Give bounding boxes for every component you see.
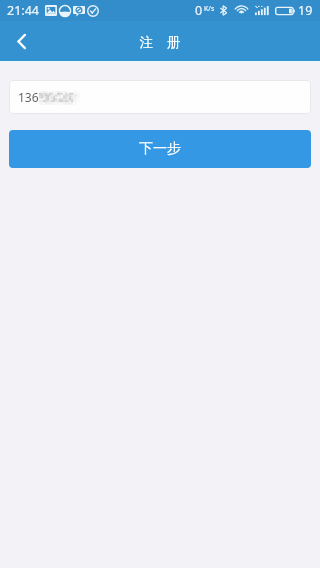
staticText: 下一步	[139, 140, 181, 158]
staticText: 0	[195, 2, 203, 19]
button[interactable]: Back	[0, 21, 42, 61]
staticText: 19	[298, 2, 313, 19]
button[interactable]: 下一步	[9, 130, 311, 168]
button[interactable]: 136	[9, 80, 311, 114]
staticText: 21:44	[7, 2, 39, 19]
staticText: 注 册	[139, 33, 181, 51]
staticText: K/s	[204, 4, 215, 14]
staticText: 136	[18, 89, 39, 105]
